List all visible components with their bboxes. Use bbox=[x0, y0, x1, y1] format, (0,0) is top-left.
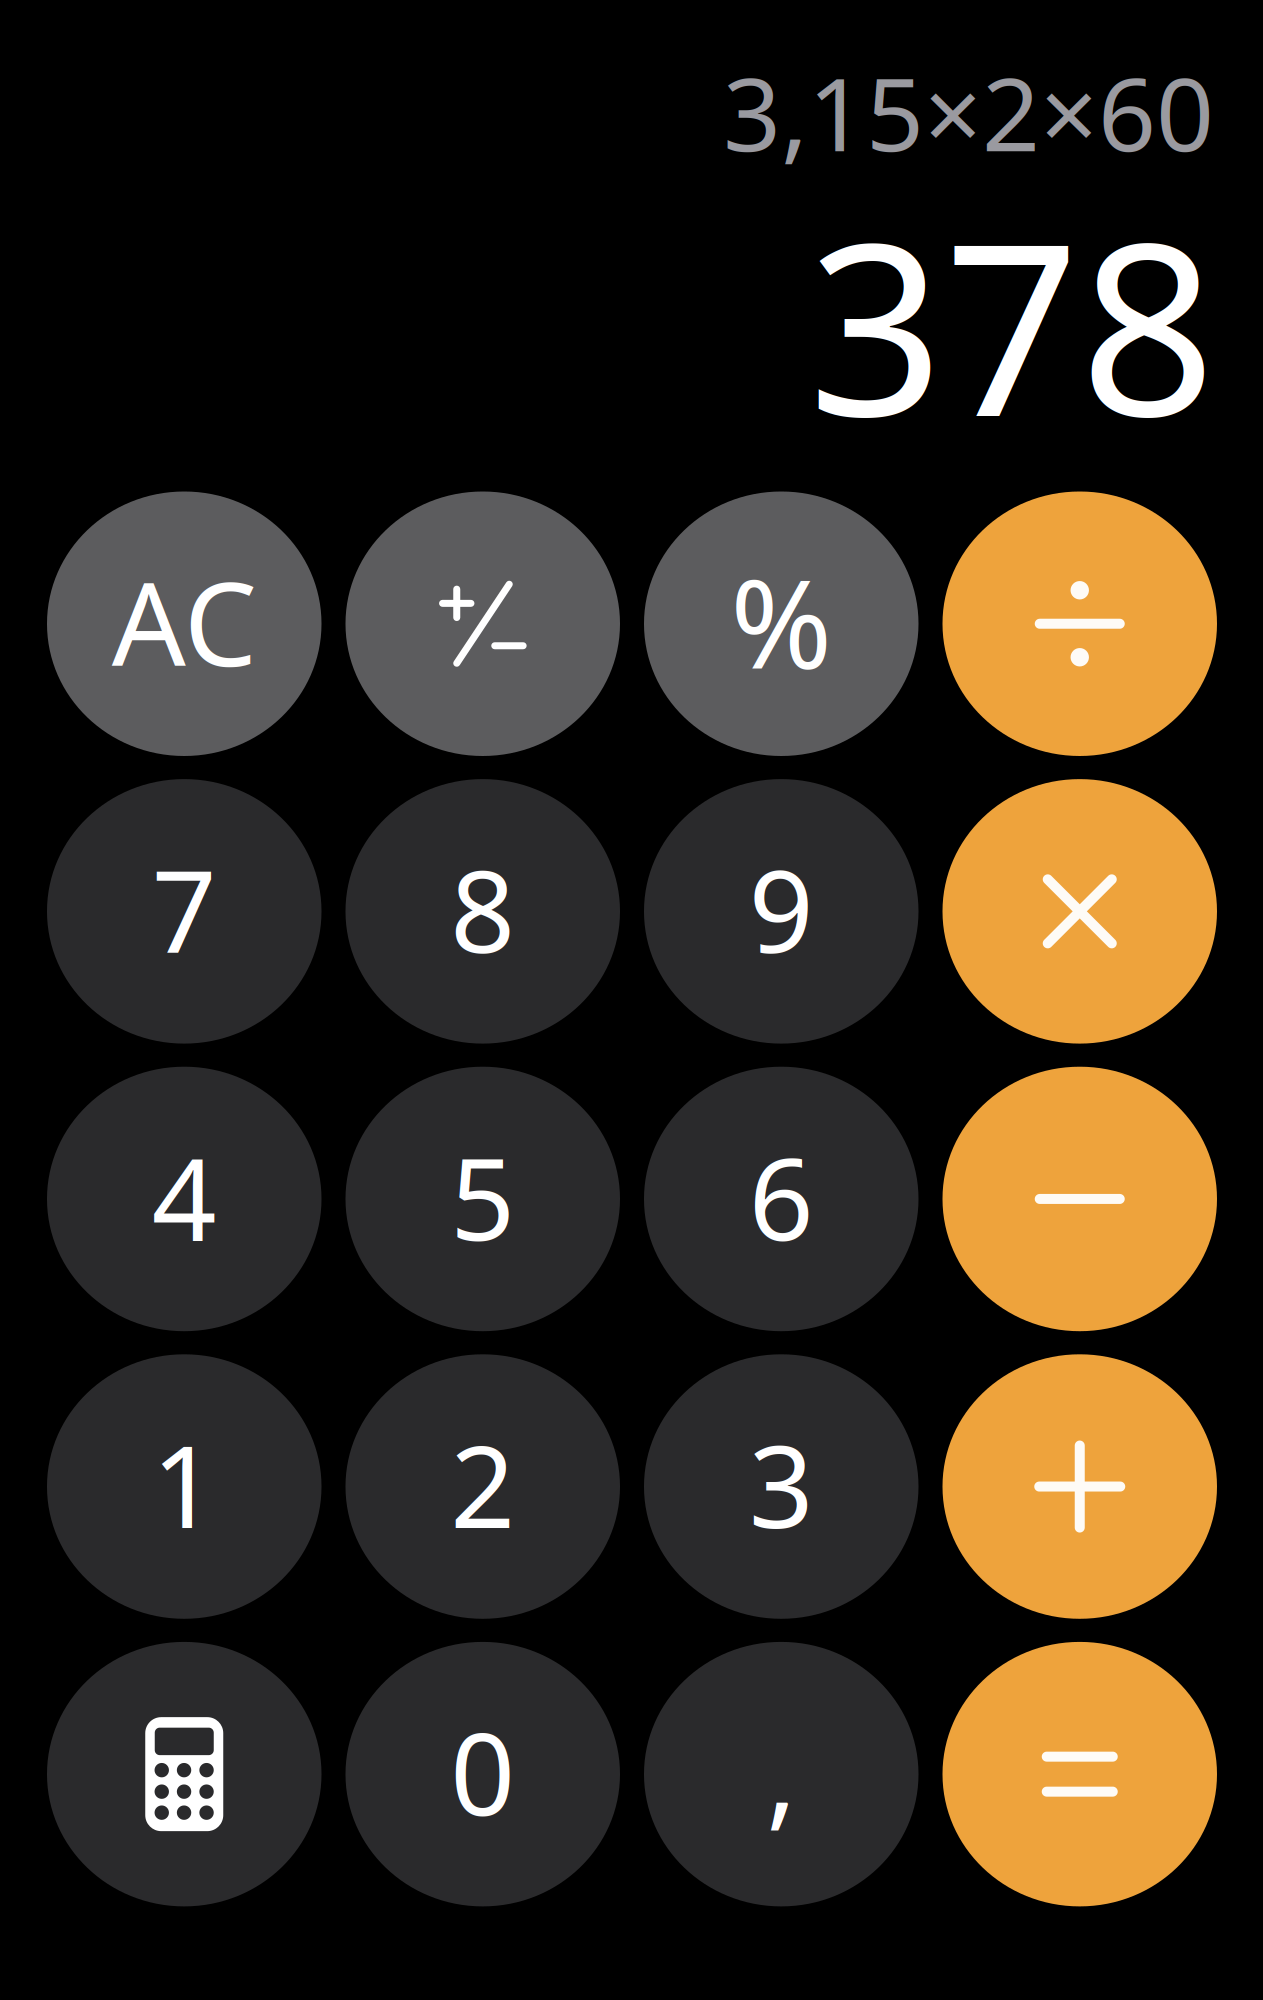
button[interactable]: Equals bbox=[942, 1642, 1217, 1906]
button[interactable]: Percent bbox=[644, 491, 918, 756]
button[interactable]: 0 bbox=[345, 1642, 620, 1906]
button[interactable]: Divide bbox=[942, 491, 1217, 756]
button[interactable]: 4 bbox=[47, 1067, 321, 1331]
staticText: 9 bbox=[749, 834, 814, 984]
button[interactable]: 6 bbox=[644, 1067, 918, 1331]
staticText: 3,15×2×60 bbox=[723, 45, 1214, 179]
button[interactable]: 8 bbox=[345, 779, 620, 1044]
button[interactable]: Calculator modes bbox=[47, 1642, 321, 1906]
button[interactable]: 2 bbox=[345, 1354, 620, 1619]
button[interactable]: 9 bbox=[644, 779, 918, 1044]
button[interactable]: 1 bbox=[47, 1354, 321, 1619]
button[interactable]: Minus bbox=[942, 1067, 1217, 1331]
staticText: 378 bbox=[808, 166, 1216, 482]
staticText: , bbox=[766, 1696, 796, 1847]
staticText: 6 bbox=[749, 1121, 814, 1272]
button[interactable]: Multiply bbox=[942, 779, 1217, 1044]
staticText: AC bbox=[112, 544, 257, 698]
button[interactable]: 3 bbox=[644, 1354, 918, 1619]
staticText: 5 bbox=[450, 1121, 515, 1272]
staticText: 1 bbox=[152, 1409, 217, 1559]
staticText: 4 bbox=[152, 1121, 217, 1272]
staticText: % bbox=[730, 540, 832, 703]
staticText: 7 bbox=[152, 834, 217, 984]
button[interactable]: Plus minus bbox=[345, 491, 620, 756]
button[interactable]: All clear bbox=[47, 491, 321, 756]
button[interactable]: Plus bbox=[942, 1354, 1217, 1619]
staticText: 3 bbox=[749, 1409, 814, 1559]
button[interactable]: 7 bbox=[47, 779, 321, 1044]
staticText: 0 bbox=[450, 1696, 515, 1847]
staticText: 8 bbox=[450, 834, 515, 984]
staticText: 2 bbox=[450, 1409, 515, 1559]
button[interactable]: Decimal separator bbox=[644, 1642, 918, 1906]
button[interactable]: 5 bbox=[345, 1067, 620, 1331]
